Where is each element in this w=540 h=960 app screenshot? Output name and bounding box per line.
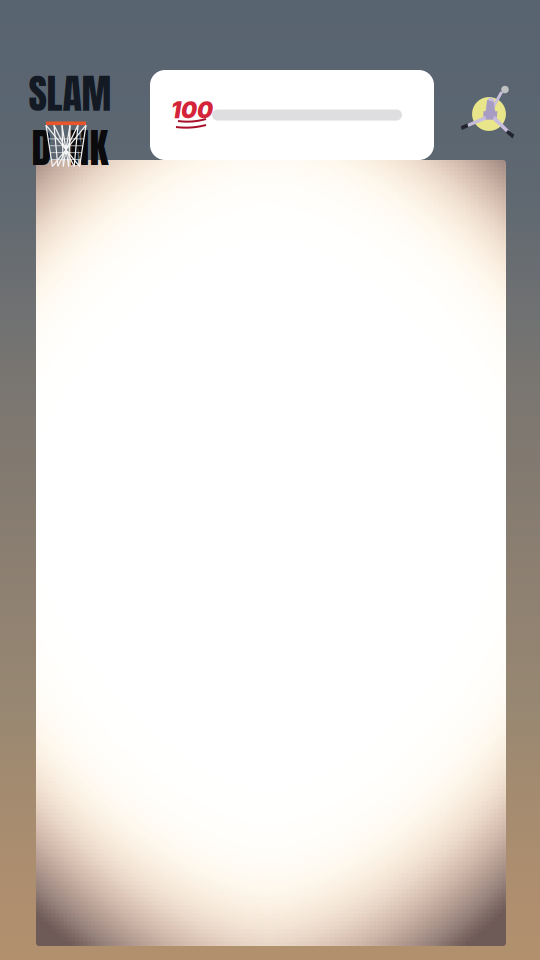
staticText: SLAM	[28, 64, 111, 124]
staticText: D NK	[31, 118, 108, 178]
button[interactable]: 100	[150, 70, 434, 160]
staticText: 100	[171, 96, 213, 124]
